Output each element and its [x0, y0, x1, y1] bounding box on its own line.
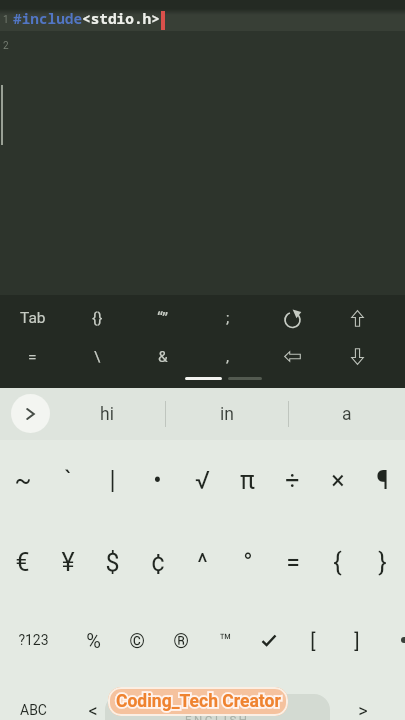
staticText: a	[342, 404, 352, 425]
staticText: 1	[3, 14, 9, 26]
button[interactable]	[260, 295, 325, 341]
button[interactable]: •	[135, 454, 180, 506]
button[interactable]: ©	[115, 614, 159, 666]
button[interactable]: <	[71, 684, 115, 720]
button[interactable]: π	[225, 454, 270, 506]
staticText: >	[358, 700, 368, 720]
button[interactable]: |	[90, 454, 135, 506]
button[interactable]: %	[71, 614, 115, 666]
button[interactable]: =	[270, 536, 315, 588]
button[interactable]: ÷	[270, 454, 315, 506]
button[interactable]: >	[341, 684, 385, 720]
staticText: ®	[173, 629, 189, 652]
button[interactable]: ENGLISH	[105, 694, 330, 720]
button[interactable]: ×	[315, 454, 360, 506]
staticText: #include<stdio.h>	[13, 9, 160, 29]
staticText: •	[153, 466, 162, 495]
button[interactable]	[247, 614, 291, 666]
staticText: ¶	[376, 466, 389, 495]
button[interactable]: ^	[180, 536, 225, 588]
staticText: hi	[100, 404, 114, 425]
staticText: }	[378, 548, 387, 577]
staticText: °	[243, 548, 253, 577]
button[interactable]: =	[0, 341, 65, 372]
button[interactable]: {	[315, 536, 360, 588]
staticText: ÷	[285, 466, 300, 495]
staticText: {	[333, 548, 342, 577]
button[interactable]: “”	[130, 295, 195, 341]
staticText: Coding_Tech Creator	[116, 691, 281, 712]
button[interactable]: [	[291, 614, 335, 666]
staticText: √	[195, 466, 210, 495]
staticText: Tab	[20, 309, 46, 327]
button[interactable]: {}	[65, 295, 130, 341]
button[interactable]: ?123	[8, 614, 58, 666]
button[interactable]	[260, 341, 325, 372]
staticText: ¢	[151, 548, 165, 577]
button[interactable]: ]	[335, 614, 379, 666]
staticText: =	[286, 548, 300, 577]
button[interactable]: √	[180, 454, 225, 506]
staticText: “”	[157, 308, 169, 328]
button[interactable]: ~	[0, 454, 45, 506]
button[interactable]: \	[65, 341, 130, 372]
staticText: %	[86, 629, 101, 652]
staticText: ?123	[18, 632, 49, 648]
staticText: `	[64, 466, 72, 495]
button[interactable]: ¶	[360, 454, 405, 506]
staticText: 2	[3, 40, 9, 52]
button[interactable]: ¥	[45, 536, 90, 588]
staticText: €	[15, 548, 30, 577]
button[interactable]: °	[225, 536, 270, 588]
button[interactable]: `	[45, 454, 90, 506]
button[interactable]: ®	[159, 614, 203, 666]
button[interactable]: }	[360, 536, 405, 588]
staticText: ^	[197, 548, 208, 577]
button[interactable]: Tab	[0, 295, 65, 341]
staticText: |	[109, 466, 116, 495]
button[interactable]: €	[0, 536, 45, 588]
button[interactable]: ,	[195, 341, 260, 372]
staticText: in	[220, 404, 234, 425]
staticText: ©	[129, 629, 145, 652]
button[interactable]: ¢	[135, 536, 180, 588]
staticText: ENGLISH	[185, 713, 250, 720]
staticText: ABC	[20, 702, 47, 718]
button[interactable]: &	[130, 341, 195, 372]
button[interactable]: in	[165, 388, 288, 440]
staticText: [	[310, 629, 316, 652]
staticText: \	[94, 348, 101, 366]
staticText: {}	[92, 309, 103, 327]
staticText: ;	[226, 309, 230, 327]
button[interactable]: a	[288, 388, 405, 440]
staticText: ¥	[61, 548, 75, 577]
button[interactable]: hi	[48, 388, 165, 440]
button[interactable]	[11, 394, 50, 433]
staticText: ™	[219, 629, 232, 652]
staticText: &	[158, 348, 168, 366]
staticText: Coding_Tech Creator	[116, 691, 281, 712]
staticText: π	[240, 466, 255, 495]
staticText: ]	[354, 629, 360, 652]
button[interactable]	[325, 341, 390, 372]
staticText: <	[88, 700, 98, 720]
staticText: ~	[14, 466, 32, 495]
staticText: =	[28, 348, 37, 366]
staticText: $	[105, 548, 120, 577]
button[interactable]: ™	[203, 614, 247, 666]
staticText: ×	[331, 466, 345, 495]
button[interactable]	[325, 295, 390, 341]
staticText: ,	[226, 348, 230, 366]
button[interactable]: $	[90, 536, 135, 588]
button[interactable]: ;	[195, 295, 260, 341]
button[interactable]: ABC	[8, 684, 58, 720]
